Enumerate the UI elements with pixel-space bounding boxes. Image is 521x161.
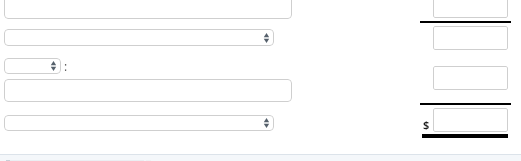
button[interactable]: Select option [4,115,274,131]
button[interactable]: Increment or decrement [262,117,271,129]
button[interactable]: Description field [4,0,292,19]
button[interactable]: Quantity [4,58,61,74]
button[interactable]: Increment or decrement [49,60,58,72]
button[interactable]: Amount field [433,108,508,132]
button[interactable]: Increment or decrement [262,32,271,44]
button[interactable]: Amount field [433,26,508,50]
staticText: : [64,58,68,74]
button[interactable]: Amount field [433,0,508,18]
button[interactable]: Amount field [433,66,508,90]
button[interactable]: Select option [4,29,274,46]
staticText: $ [423,117,430,132]
button[interactable]: Notes field [4,79,292,102]
